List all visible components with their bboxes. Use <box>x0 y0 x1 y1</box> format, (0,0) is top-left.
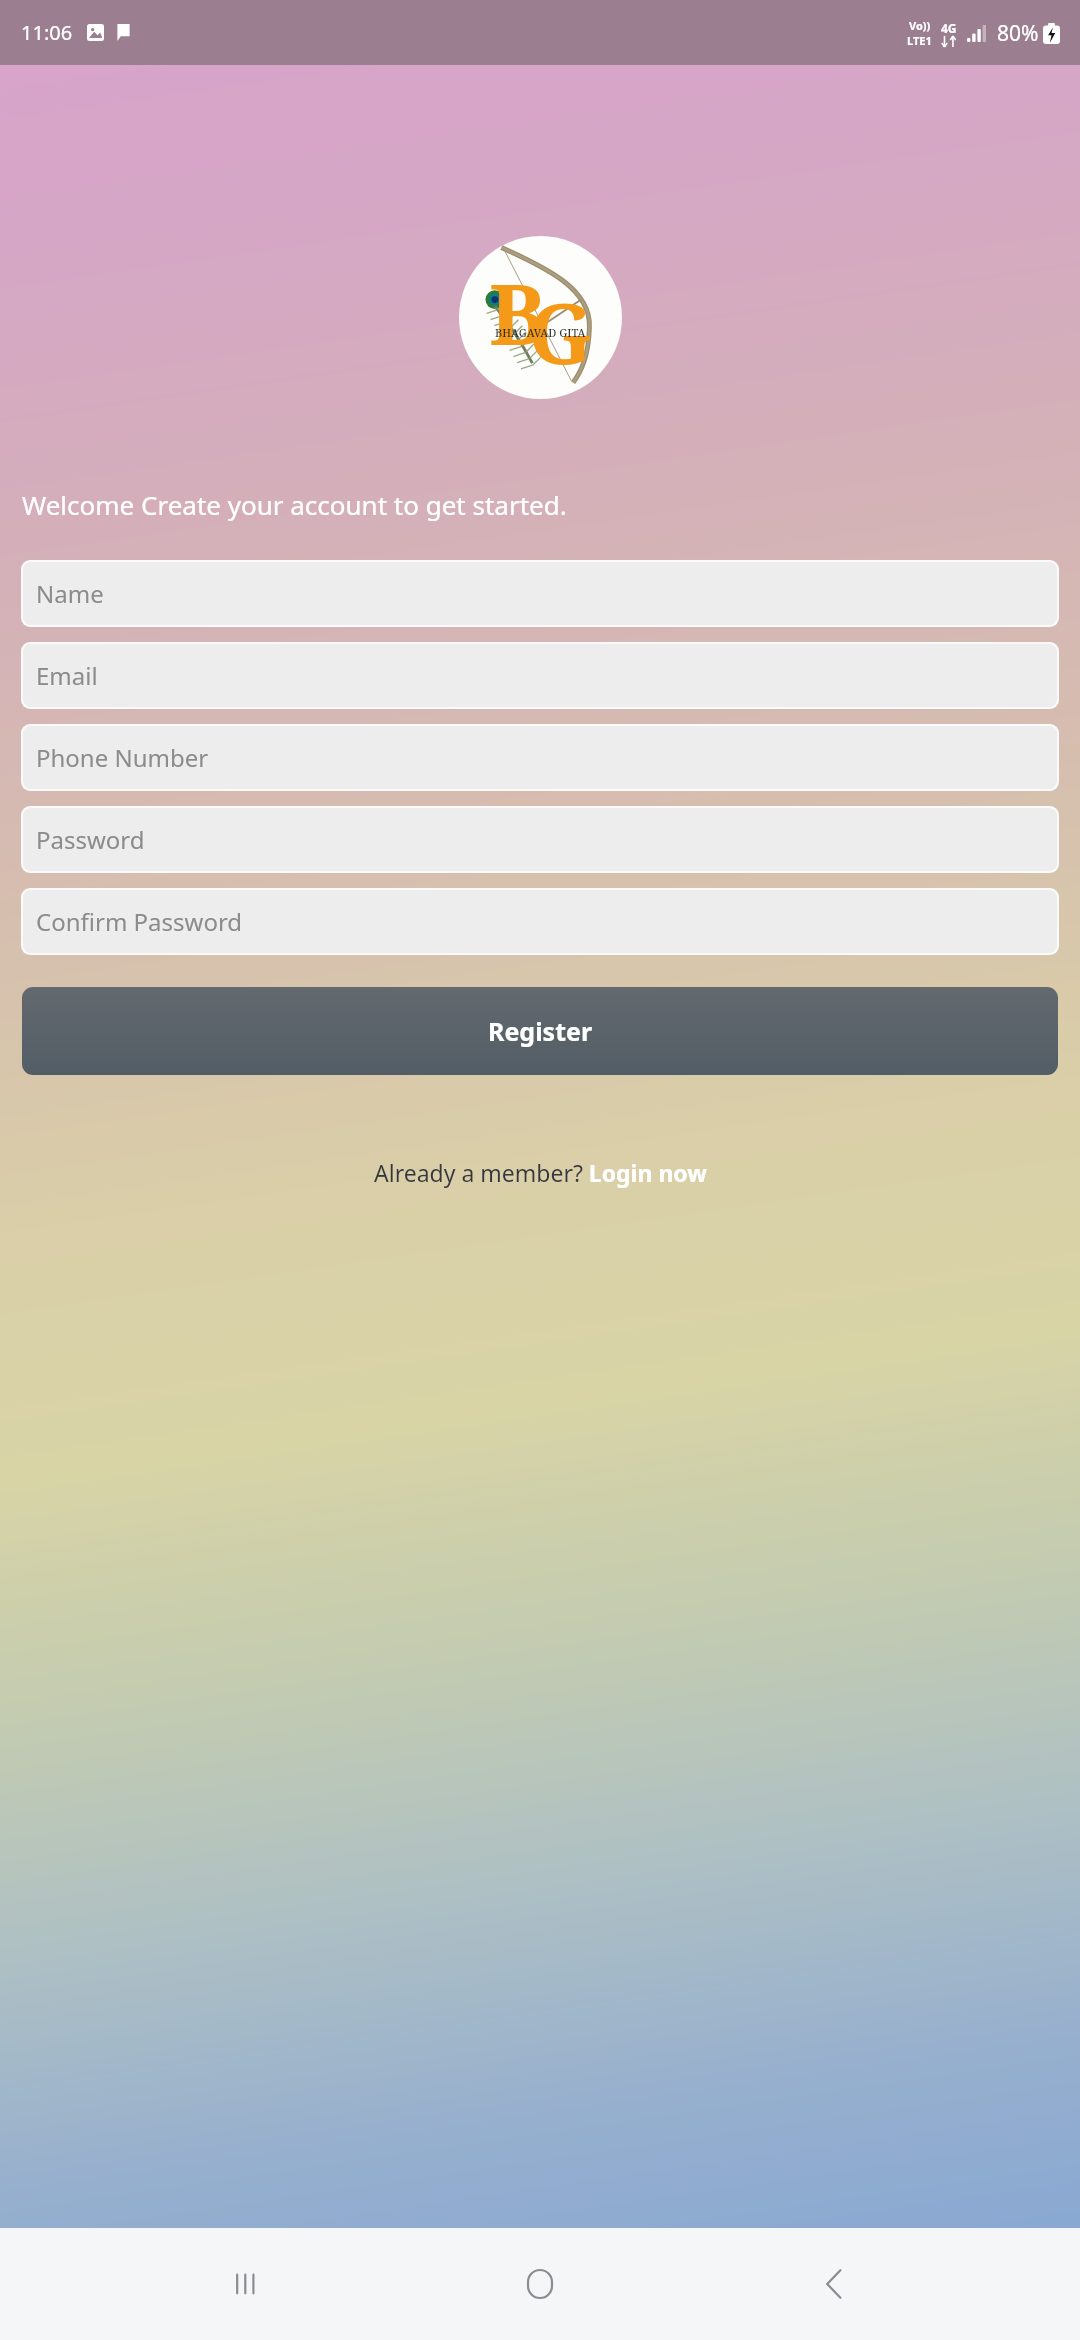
staticText: LTE1 <box>907 33 932 48</box>
staticText: 11:06 <box>21 19 73 46</box>
staticText: Password <box>36 823 145 856</box>
button[interactable]: Email <box>23 644 1057 707</box>
staticText: Register <box>488 1014 593 1048</box>
staticText: 80% <box>997 19 1039 48</box>
staticText: Name <box>36 577 104 610</box>
staticText: Welcome Create your account to get start… <box>22 487 1080 522</box>
button[interactable]: Home <box>492 2236 588 2332</box>
staticText: B <box>489 255 546 369</box>
staticText: Phone Number <box>36 741 209 774</box>
button[interactable]: Register <box>22 987 1058 1075</box>
button[interactable]: Name <box>23 562 1057 625</box>
staticText: Vo)) <box>909 18 931 33</box>
staticText: BHAGAVAD GITA <box>495 325 586 340</box>
button[interactable]: Phone Number <box>23 726 1057 789</box>
button[interactable]: Confirm Password <box>23 890 1057 953</box>
button[interactable]: Back <box>786 2236 882 2332</box>
staticText: Already a member? Login now <box>374 1157 707 1188</box>
staticText: Email <box>36 659 98 692</box>
button[interactable]: Recents <box>198 2236 294 2332</box>
button[interactable]: Password <box>23 808 1057 871</box>
button[interactable]: Already a member? Login now <box>374 1157 707 1188</box>
staticText: G <box>528 274 593 388</box>
staticText: 4G <box>941 20 957 36</box>
staticText: Confirm Password <box>36 905 243 938</box>
